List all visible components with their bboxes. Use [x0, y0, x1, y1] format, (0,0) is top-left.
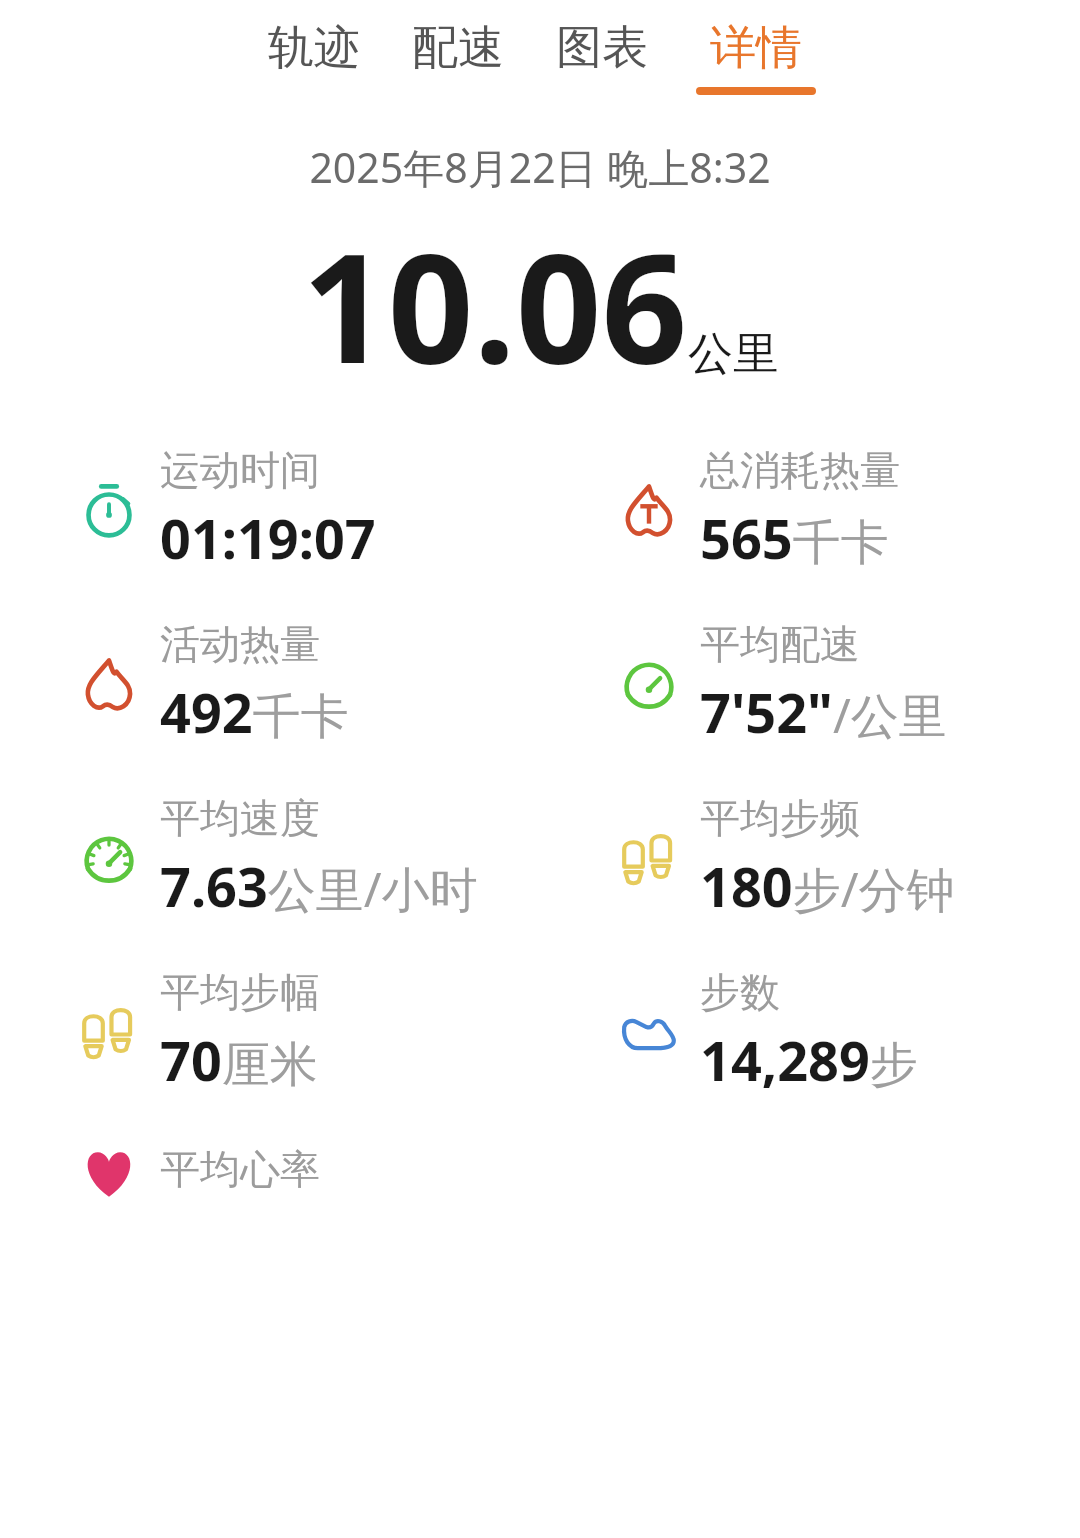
other: 活动热量 [78, 653, 140, 715]
staticText: 步数 [700, 967, 780, 1017]
staticText: 平均步频 [700, 793, 860, 843]
staticText: 平均心率 [160, 1144, 320, 1194]
staticText: 492千卡 [160, 675, 349, 749]
other: 平均配速 [618, 653, 680, 715]
staticText: 180步/分钟 [700, 849, 955, 923]
other: 总消耗热量 [618, 479, 680, 541]
staticText: 活动热量 [160, 619, 320, 669]
button[interactable]: 步数 [540, 967, 1080, 1097]
staticText: 01:19:07 [160, 501, 376, 575]
staticText: 平均速度 [160, 793, 320, 843]
staticText: 70厘米 [160, 1023, 318, 1097]
button[interactable]: 图表 [530, 15, 674, 91]
button[interactable]: 平均配速 [540, 619, 1080, 749]
button[interactable]: 轨迹 [242, 15, 386, 91]
staticText: 平均步幅 [160, 967, 320, 1017]
other: 平均步幅 [78, 1001, 140, 1063]
other: 步数 [618, 1001, 680, 1063]
staticText: 运动时间 [160, 445, 320, 495]
staticText: 图表 [556, 19, 648, 77]
staticText: 配速 [412, 19, 504, 77]
other: 平均速度 [78, 827, 140, 889]
staticText: 565千卡 [700, 501, 889, 575]
button[interactable]: 总消耗热量 [540, 445, 1080, 575]
button[interactable]: 运动时间 [0, 445, 540, 575]
staticText: 平均配速 [700, 619, 860, 669]
staticText: 2025年8月22日 晚上8:32 [0, 139, 1080, 195]
button[interactable]: 平均速度 [0, 793, 540, 923]
button[interactable]: 平均步幅 [0, 967, 540, 1097]
other: 运动时间 [78, 479, 140, 541]
button[interactable]: 平均心率 [0, 1141, 540, 1203]
other: 平均心率 [78, 1141, 140, 1203]
button[interactable]: 配速 [386, 15, 530, 91]
staticText: 轨迹 [268, 19, 360, 77]
staticText: 7'52"/公里 [700, 675, 947, 749]
other: 平均步频 [618, 827, 680, 889]
staticText: 7.63公里/小时 [160, 849, 478, 923]
staticText: 10.06 [302, 203, 688, 407]
staticText: 公里 [688, 326, 778, 383]
button[interactable]: 平均步频 [540, 793, 1080, 923]
staticText: 总消耗热量 [700, 445, 900, 495]
staticText: 14,289步 [700, 1023, 918, 1097]
button[interactable]: 活动热量 [0, 619, 540, 749]
staticText: 详情 [710, 19, 802, 77]
button[interactable]: 详情 [674, 15, 838, 99]
